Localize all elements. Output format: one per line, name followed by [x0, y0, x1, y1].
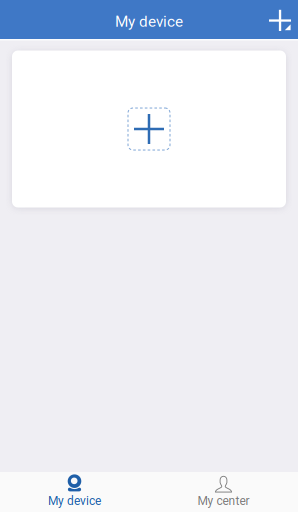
staticText: My device [48, 494, 101, 508]
button[interactable]: Add device [262, 0, 298, 39]
button[interactable]: My center [149, 472, 298, 512]
button[interactable]: My device [0, 472, 149, 512]
staticText: My center [197, 494, 249, 508]
staticText: My device [115, 12, 183, 30]
button[interactable]: Add a device [12, 50, 286, 207]
